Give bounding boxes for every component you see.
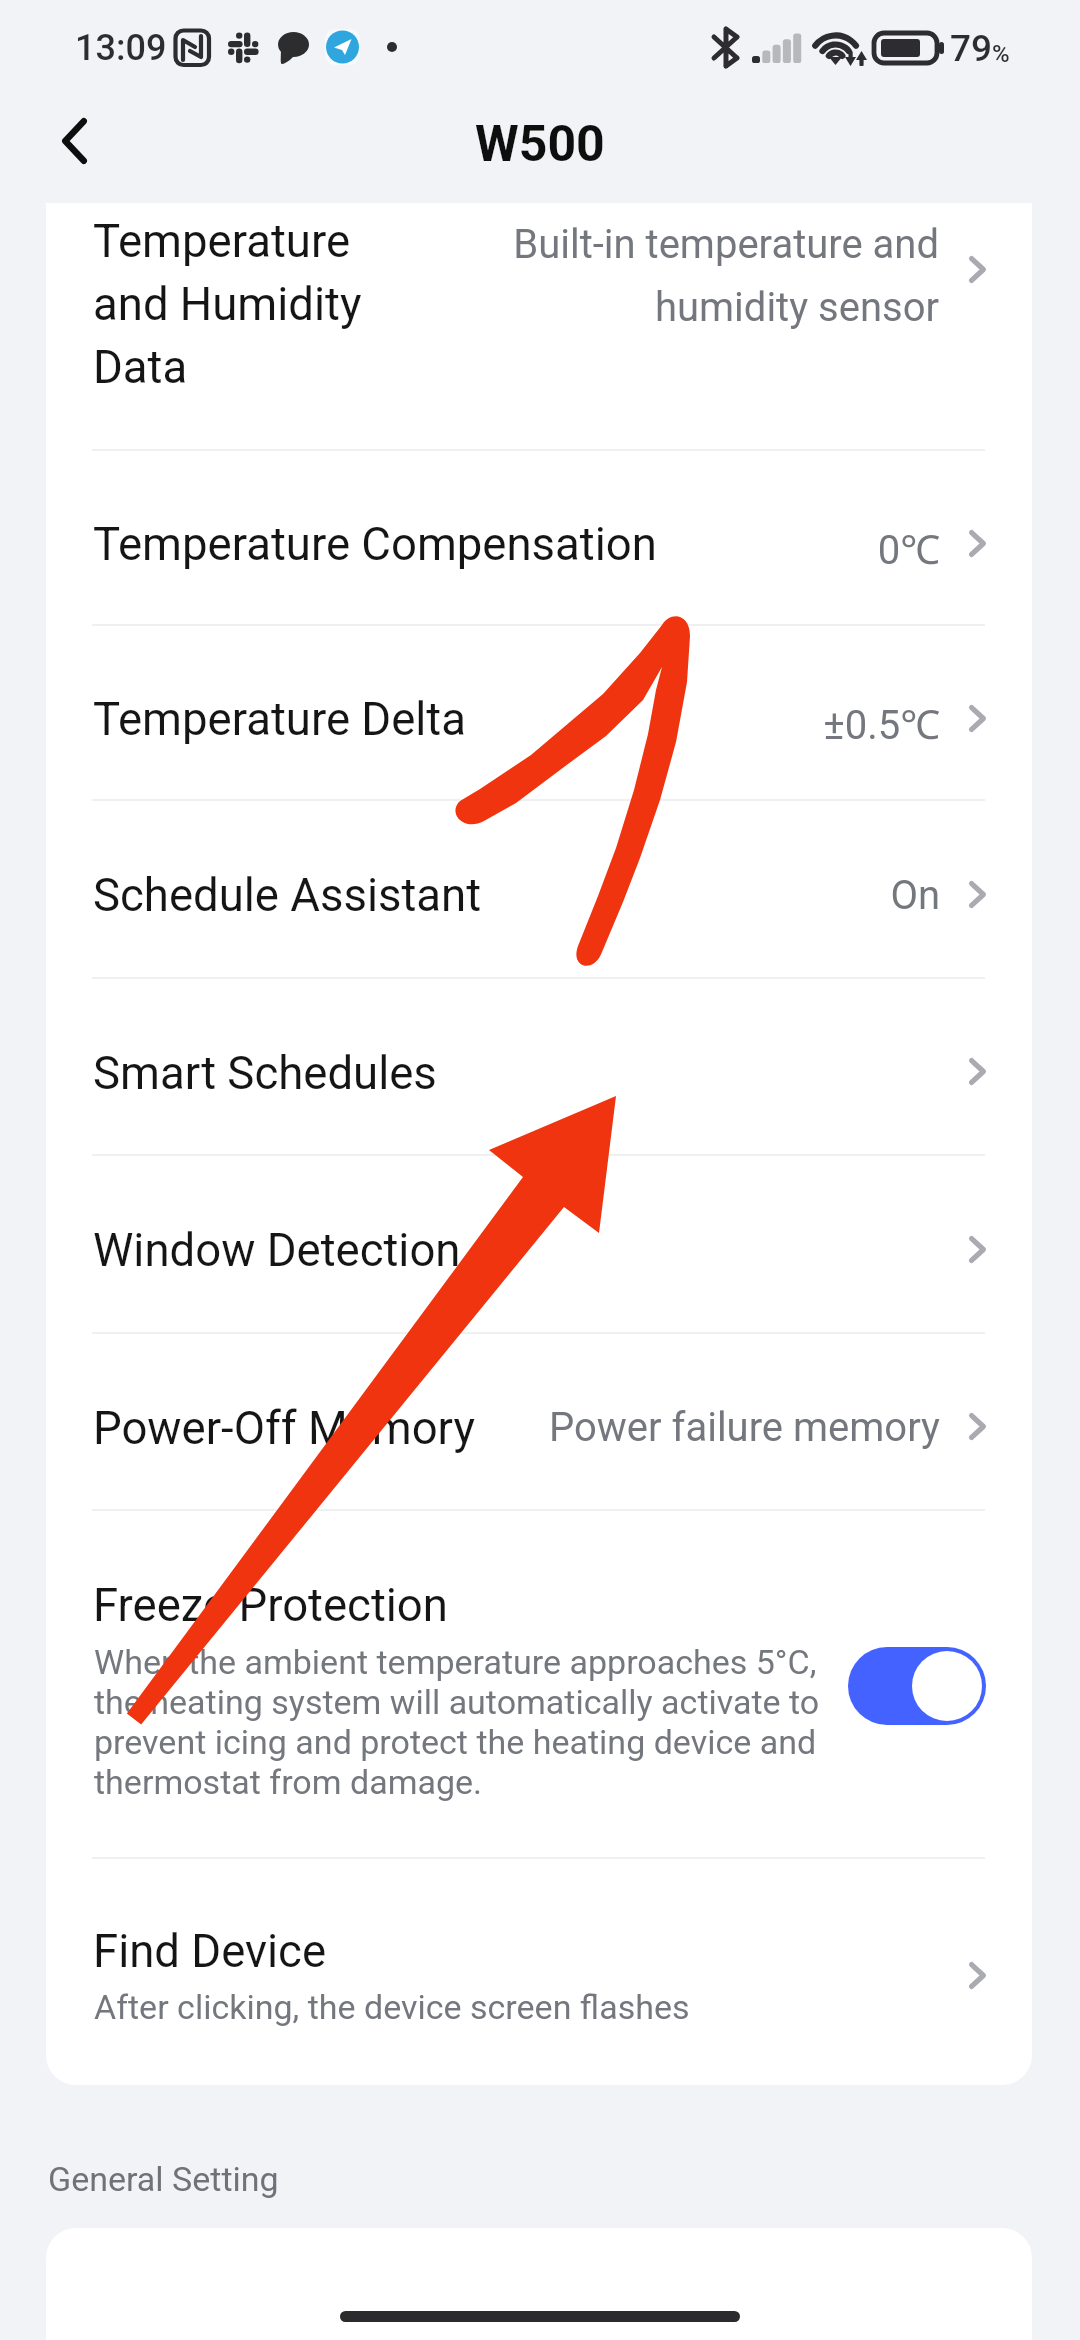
staticText: Smart Schedules — [93, 1047, 437, 1100]
staticText: % — [992, 40, 1010, 68]
button[interactable]: Temperature Delta — [46, 626, 1032, 801]
staticText: 79 — [950, 27, 993, 70]
staticText: Freeze Protection — [93, 1579, 448, 1632]
staticText: Temperature Compensation — [93, 518, 657, 571]
staticText: When the ambient temperature approaches … — [94, 1642, 828, 1802]
staticText: After clicking, the device screen flashe… — [94, 1987, 690, 2027]
staticText: Schedule Assistant — [93, 869, 482, 922]
staticText: Built-in temperature and humidity sensor — [466, 221, 939, 331]
button[interactable]: Temperature Compensation — [46, 451, 1032, 626]
button[interactable]: Find Device — [46, 1859, 1032, 2085]
staticText: General Setting — [48, 2159, 279, 2199]
button[interactable]: Back — [34, 101, 114, 181]
staticText: Find Device — [93, 1925, 327, 1978]
staticText: Power-Off Memory — [93, 1402, 475, 1455]
button[interactable]: Schedule Assistant — [46, 801, 1032, 978]
staticText: Temperature and Humidity Data — [93, 215, 393, 394]
button[interactable]: Freeze Protection toggle — [848, 1647, 986, 1725]
staticText: Window Detection — [93, 1224, 461, 1277]
staticText: On — [346, 872, 940, 919]
staticText: W500 — [475, 115, 605, 174]
staticText: Power failure memory — [346, 1404, 940, 1451]
staticText: ±0.5℃ — [346, 696, 940, 750]
button[interactable]: Power-Off Memory — [46, 1334, 1032, 1510]
button[interactable]: Temperature and Humidity Data — [46, 203, 1032, 450]
staticText: 13:09 — [75, 27, 167, 69]
button[interactable]: Freeze Protection — [46, 1511, 1032, 1857]
button[interactable]: Smart Schedules — [46, 979, 1032, 1155]
button[interactable]: Window Detection — [46, 1156, 1032, 1333]
staticText: 0℃ — [346, 521, 940, 575]
staticText: Temperature Delta — [93, 693, 466, 746]
